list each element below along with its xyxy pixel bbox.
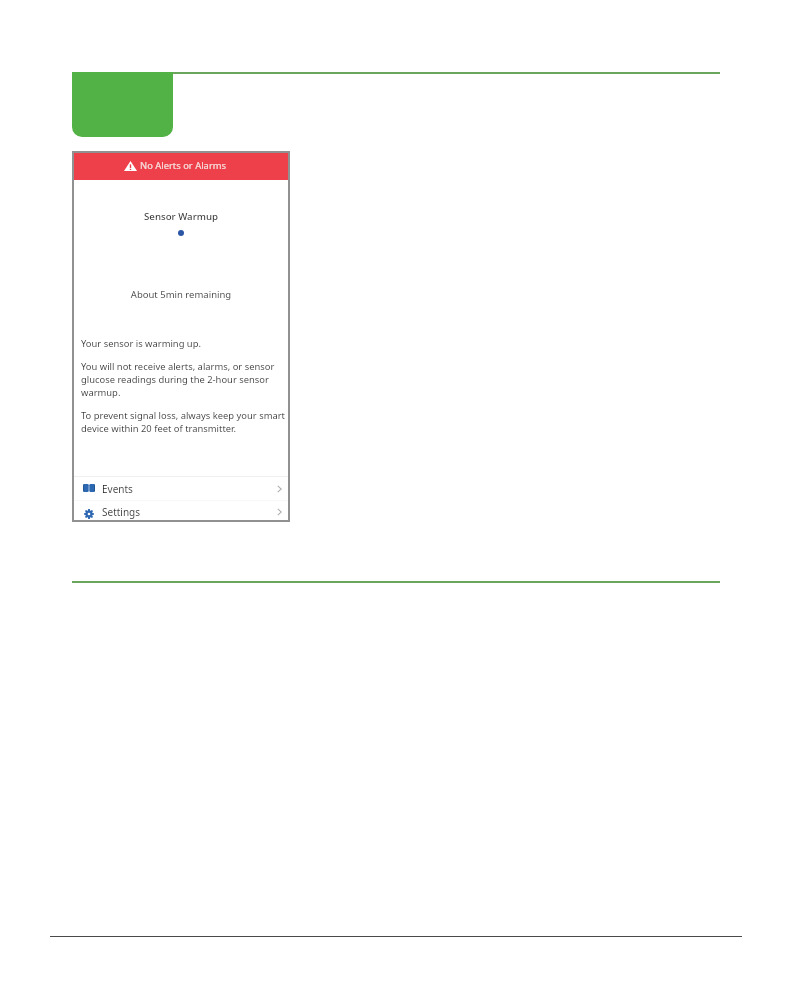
staticText: Sensor Warmup [72, 210, 290, 223]
staticText: You will not receive alerts, alarms, or … [81, 360, 275, 399]
staticText: To prevent signal loss, always keep your… [81, 409, 285, 435]
other: Warning [124, 161, 137, 171]
staticText: No Alerts or Alarms [140, 159, 227, 172]
staticText: Settings [102, 505, 141, 519]
button[interactable]: No Alerts or Alarms [72, 151, 290, 180]
staticText: Your sensor is warming up. [81, 337, 201, 350]
button[interactable]: Events [72, 477, 290, 500]
staticText: About 5min remaining [72, 288, 290, 301]
staticText: Events [102, 482, 133, 496]
button[interactable]: Settings [72, 501, 290, 522]
